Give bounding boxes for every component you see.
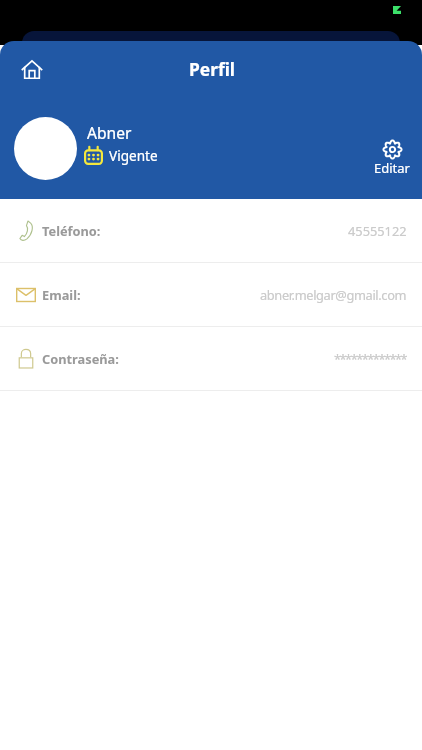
staticText: ************* (334, 350, 407, 367)
staticText: Editar (374, 159, 410, 177)
button[interactable]: Email: (0, 263, 422, 327)
staticText: Contraseña: (42, 350, 119, 367)
other: Battery (393, 6, 401, 14)
staticText: Email: (42, 286, 81, 303)
button[interactable]: Teléfono: (0, 199, 422, 263)
staticText: Perfil (1, 57, 422, 81)
button[interactable]: Home (14, 51, 50, 87)
staticText: Vigente (109, 146, 158, 165)
staticText: Abner (87, 122, 132, 143)
staticText: Teléfono: (42, 222, 101, 239)
staticText: 45555122 (348, 222, 407, 239)
button[interactable]: Editar (374, 137, 410, 177)
button[interactable]: Contraseña: (0, 327, 422, 391)
staticText: abner.melgar@gmail.com (260, 286, 407, 303)
